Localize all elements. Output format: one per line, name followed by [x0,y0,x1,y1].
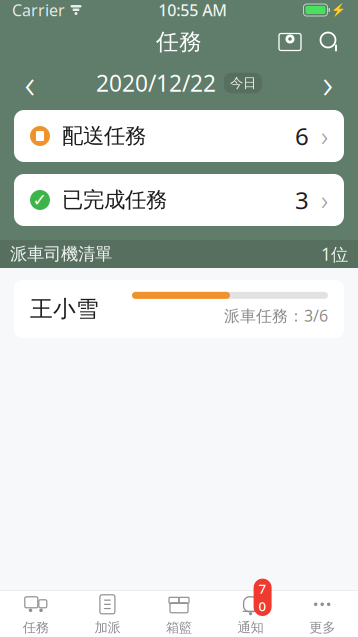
button[interactable]: Map [270,22,310,62]
button[interactable]: 配送任務 [14,110,344,162]
staticText: 任務 [23,619,49,636]
staticText: 加派 [94,619,120,636]
staticText: 通知 [238,619,264,636]
staticText: 王小雪 [30,295,99,323]
staticText: 派車任務：3/6 [224,305,328,326]
button[interactable]: 70 [215,591,286,637]
button[interactable]: 更多 [286,591,358,637]
staticText: 70 [259,580,267,615]
button[interactable]: ✓ [14,174,344,226]
staticText: 2020/12/22 [96,68,216,98]
staticText: 任務 [156,28,202,56]
staticText: ✓ [32,190,47,210]
button[interactable]: 任務 [0,591,72,637]
staticText: Carrier [12,0,65,21]
button[interactable]: Search [310,22,350,62]
staticText: ⚡ [331,3,346,17]
staticText: 今日 [230,75,256,91]
staticText: 6 [295,120,309,152]
staticText: › [321,118,328,154]
button[interactable]: Previous day [8,65,52,101]
staticText: 10:55 AM [158,0,227,21]
staticText: › [322,56,333,109]
button[interactable]: 王小雪 [14,280,344,338]
button[interactable]: 箱籃 [143,591,215,637]
staticText: 更多 [309,619,335,636]
staticText: 箱籃 [166,619,192,636]
staticText: 已完成任務 [62,187,167,213]
staticText: 配送任務 [62,123,146,149]
staticText: › [321,182,328,218]
staticText: 3 [295,184,309,216]
button[interactable]: 加派 [72,591,143,637]
staticText: 派車司機清單 [10,243,112,265]
staticText: ‹ [24,56,35,109]
staticText: 1位 [321,242,348,265]
button[interactable]: Next day [306,65,350,101]
